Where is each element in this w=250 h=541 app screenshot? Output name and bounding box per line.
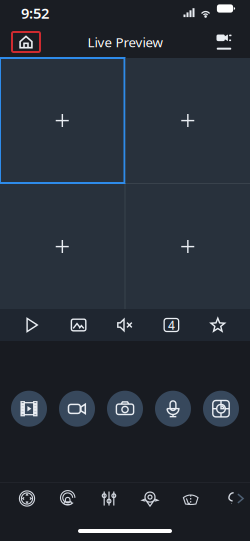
- button[interactable]: Spotlight: [129, 479, 170, 517]
- button[interactable]: Camera 1, selected: [0, 58, 124, 183]
- button[interactable]: Add camera: [125, 184, 250, 309]
- button[interactable]: More controls: [231, 479, 249, 517]
- staticText: 9:52: [21, 3, 49, 23]
- button[interactable]: Siren: [47, 479, 88, 517]
- button[interactable]: Add camera: [0, 184, 124, 309]
- button[interactable]: Play: [9, 309, 55, 341]
- button[interactable]: Wipers: [170, 479, 211, 517]
- button[interactable]: Mute: [102, 309, 148, 341]
- staticText: 4: [168, 317, 175, 333]
- button[interactable]: Grid layout: 4: [148, 309, 195, 341]
- button[interactable]: Horn: [211, 479, 250, 517]
- button[interactable]: Add camera: [125, 58, 250, 183]
- button[interactable]: Take photo: [107, 391, 143, 427]
- button[interactable]: Talk: [155, 391, 191, 427]
- button[interactable]: Snapshots: [55, 309, 102, 341]
- staticText: Live Preview: [87, 33, 162, 51]
- button[interactable]: Pan tilt zoom: [203, 391, 239, 427]
- button[interactable]: Stream settings: [213, 32, 235, 52]
- button[interactable]: Home: [12, 32, 40, 52]
- button[interactable]: Recordings: [11, 391, 47, 427]
- button[interactable]: Record video: [59, 391, 95, 427]
- button[interactable]: Favorite: [195, 309, 241, 341]
- button[interactable]: Adjustments: [88, 479, 129, 517]
- button[interactable]: Move: [6, 479, 47, 517]
